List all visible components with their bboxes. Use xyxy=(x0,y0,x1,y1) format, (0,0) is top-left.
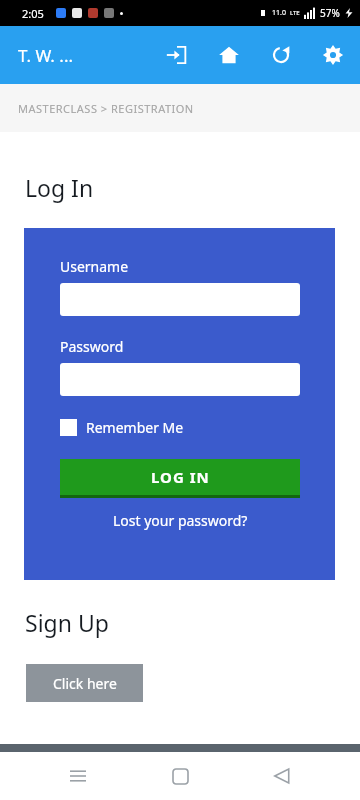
button[interactable]: Back xyxy=(258,752,306,800)
button[interactable]: Lost your password? xyxy=(113,511,248,530)
button[interactable]: LOG IN xyxy=(60,459,300,498)
button[interactable]: Click here xyxy=(26,664,143,702)
button[interactable]: Home xyxy=(214,40,244,70)
staticText: LTE xyxy=(290,9,300,17)
staticText: Click here xyxy=(53,674,117,693)
button[interactable]: Settings xyxy=(318,40,348,70)
button[interactable]: Home xyxy=(156,752,204,800)
button[interactable]: Log in xyxy=(162,40,192,70)
staticText: 57% xyxy=(320,6,340,20)
staticText: Remember Me xyxy=(86,418,184,437)
button[interactable]: Refresh xyxy=(266,40,296,70)
staticText: Username xyxy=(60,257,129,276)
staticText: LOG IN xyxy=(151,467,210,487)
button[interactable]: Remember Me xyxy=(60,418,184,437)
staticText: Sign Up xyxy=(25,607,109,638)
staticText: 11.0 xyxy=(272,8,286,18)
staticText: 2:05 xyxy=(22,6,44,21)
staticText: Password xyxy=(60,337,124,356)
button[interactable]: Recent apps xyxy=(54,752,102,800)
staticText: Log In xyxy=(25,172,94,203)
button[interactable] xyxy=(60,283,300,316)
button[interactable] xyxy=(60,363,300,396)
staticText: MASTERCLASS > REGISTRATION xyxy=(18,101,194,116)
staticText: T. W. ... xyxy=(18,44,74,67)
